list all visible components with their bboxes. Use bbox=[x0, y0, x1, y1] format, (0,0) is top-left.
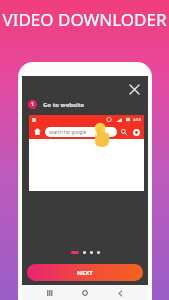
button[interactable]: NEXT bbox=[27, 264, 143, 281]
button[interactable]: Settings bbox=[131, 127, 141, 137]
button[interactable]: Close bbox=[127, 82, 141, 96]
button[interactable]: Recents bbox=[43, 286, 57, 300]
staticText: search for google bbox=[49, 129, 87, 135]
staticText: 1 bbox=[31, 101, 34, 108]
staticText: Go to website bbox=[43, 101, 85, 109]
button[interactable]: Back bbox=[113, 286, 127, 300]
staticText: 4:59 bbox=[133, 117, 141, 122]
button[interactable]: Home bbox=[32, 126, 43, 137]
staticText: NEXT bbox=[77, 269, 93, 277]
staticText: VIDEO DOWNLODER bbox=[2, 8, 167, 31]
button[interactable]: Home bbox=[78, 286, 92, 300]
button[interactable]: Search bbox=[119, 127, 129, 137]
button[interactable]: search for google bbox=[45, 127, 117, 137]
